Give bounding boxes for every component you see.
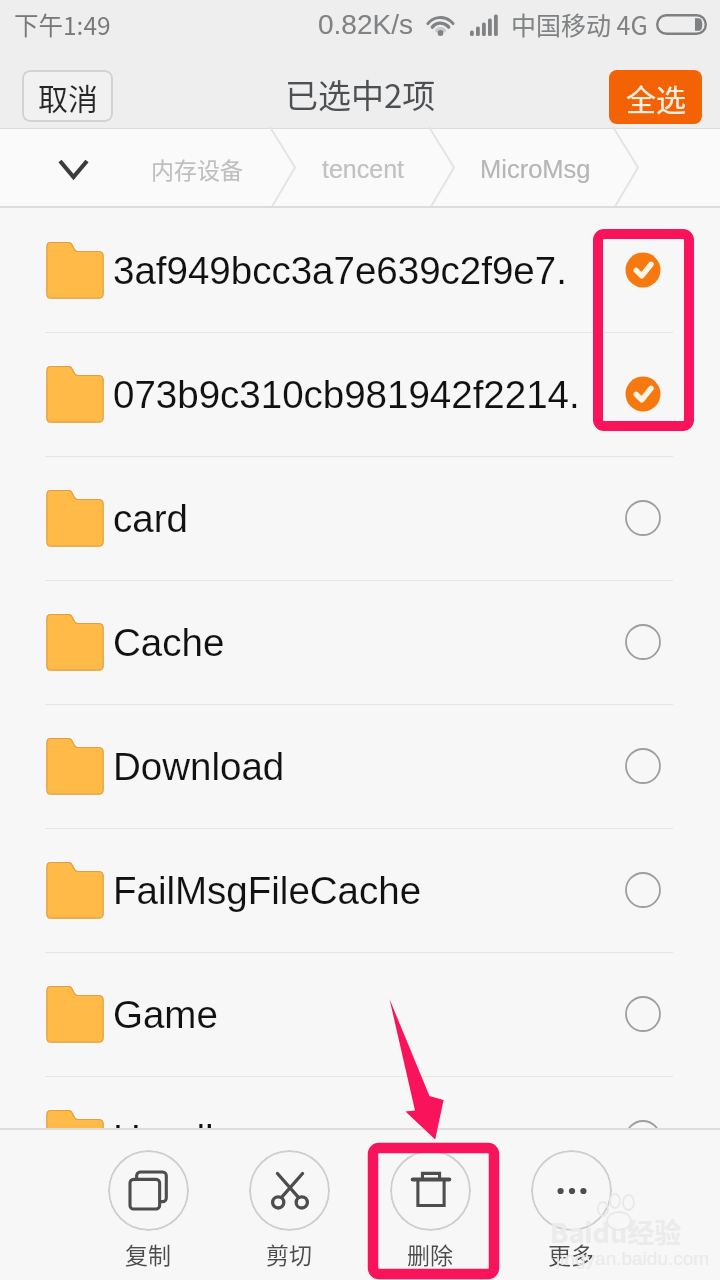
staticText: Download	[113, 745, 608, 788]
staticText: Baidu经验	[550, 1212, 682, 1251]
staticText: MicroMsg	[480, 155, 591, 183]
button[interactable]: Download	[0, 704, 720, 828]
button[interactable]: MicroMsg	[480, 155, 591, 183]
button[interactable]: 073b9c310cb981942f2214.	[0, 332, 720, 456]
button[interactable]: 全选	[609, 70, 702, 124]
staticText: 全选	[626, 76, 686, 119]
staticText: 取消	[38, 75, 98, 118]
button[interactable]: Handler	[0, 1076, 720, 1200]
staticText: 0.82K/s	[318, 9, 413, 40]
button[interactable]: 内存设备	[151, 152, 243, 185]
staticText: tencent	[322, 155, 405, 183]
staticText: 剪切	[266, 1237, 312, 1270]
staticText: 更多	[548, 1237, 594, 1270]
button[interactable]: Not selected	[604, 456, 720, 580]
button[interactable]: Not selected	[604, 580, 720, 704]
staticText: Game	[113, 993, 608, 1036]
staticText: 内存设备	[151, 152, 243, 185]
staticText: 3af949bcc3a7e639c2f9e7.	[113, 249, 608, 292]
button[interactable]: Not selected	[604, 828, 720, 952]
staticText: card	[113, 497, 608, 540]
button[interactable]: FailMsgFileCache	[0, 828, 720, 952]
button[interactable]: 复制	[88, 1128, 208, 1280]
button[interactable]: Not selected	[604, 952, 720, 1076]
button[interactable]: Expand path	[43, 139, 103, 199]
staticText: 中国移动 4G	[511, 6, 648, 42]
button[interactable]: 3af949bcc3a7e639c2f9e7.	[0, 208, 720, 332]
button[interactable]: Selected	[604, 208, 720, 332]
button[interactable]: 剪切	[229, 1128, 349, 1280]
button[interactable]: 更多	[511, 1128, 631, 1280]
button[interactable]: Game	[0, 952, 720, 1076]
button[interactable]: tencent	[322, 155, 405, 183]
staticText: Handler	[113, 1117, 608, 1160]
button[interactable]: Not selected	[604, 704, 720, 828]
staticText: 删除	[407, 1237, 453, 1270]
staticText: 已选中2项	[285, 70, 436, 118]
staticText: Cache	[113, 621, 608, 664]
staticText: 073b9c310cb981942f2214.	[113, 373, 608, 416]
staticText: 复制	[125, 1237, 171, 1270]
button[interactable]: card	[0, 456, 720, 580]
button[interactable]: Not selected	[604, 1076, 720, 1200]
button[interactable]: 删除	[370, 1128, 490, 1280]
staticText: 下午1:49	[14, 7, 111, 42]
button[interactable]: Selected	[604, 332, 720, 456]
button[interactable]: 取消	[22, 70, 113, 122]
staticText: FailMsgFileCache	[113, 869, 608, 912]
button[interactable]: Cache	[0, 580, 720, 704]
staticText: jingyan.baidu.com	[556, 1248, 710, 1269]
